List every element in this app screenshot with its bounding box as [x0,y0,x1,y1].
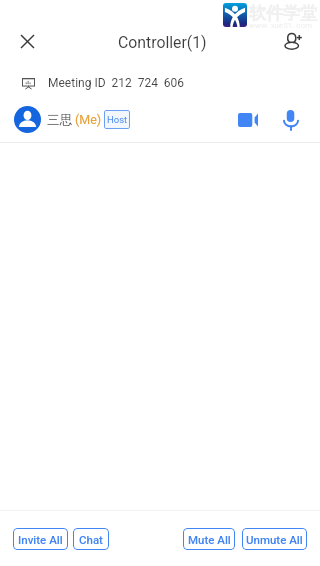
button[interactable]: Chat [73,528,109,550]
staticText: Unmute All [246,533,303,546]
button[interactable]: Add participant [275,23,311,59]
staticText: Host [107,114,128,125]
staticText: Chat [79,533,103,546]
button[interactable]: Video on [232,105,264,135]
staticText: (Me) [75,112,102,127]
button[interactable]: Close [9,23,45,59]
button[interactable]: Invite All [13,528,68,550]
button[interactable]: Mute All [183,528,235,550]
button[interactable]: Unmute All [242,528,307,550]
staticText: Invite All [18,533,63,546]
staticText: www. xue51. com [249,21,313,30]
staticText: 软件学堂 [249,3,317,24]
button[interactable]: 三思 [0,104,320,142]
staticText: Controller(1) [118,33,207,52]
staticText: Meeting ID 212 724 606 [48,76,185,90]
staticText: Mute All [188,533,231,546]
staticText: 三思 [47,112,72,128]
button[interactable]: Microphone on [276,105,306,135]
